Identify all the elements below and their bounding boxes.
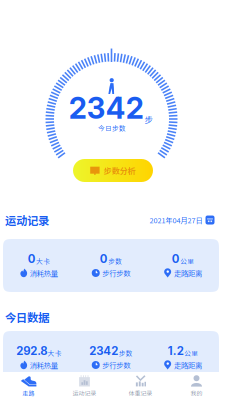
staticText: 消耗热量 <box>30 360 58 370</box>
staticText: 0 <box>172 252 180 266</box>
staticText: 2342 <box>69 90 144 126</box>
button[interactable]: 我的 <box>168 372 224 399</box>
staticText: 步数 <box>108 256 122 266</box>
staticText: 大卡 <box>36 256 50 266</box>
staticText: 走路距离 <box>174 268 202 278</box>
staticText: 步数 <box>119 348 133 358</box>
staticText: 走路 <box>22 389 34 398</box>
button[interactable]: 走路 <box>0 372 56 399</box>
staticText: 体重记录 <box>128 389 152 398</box>
staticText: 1.2 <box>168 344 184 358</box>
staticText: 运动记录 <box>72 389 96 398</box>
staticText: 步行步数 <box>102 360 130 370</box>
staticText: 消耗热量 <box>30 268 58 278</box>
staticText: 公里 <box>180 256 194 266</box>
button[interactable]: 体重记录 <box>112 372 168 399</box>
button[interactable]: 运动记录 <box>56 372 112 399</box>
staticText: 步数分析 <box>104 165 136 176</box>
staticText: 公里 <box>184 348 198 358</box>
staticText: 走路距离 <box>174 360 202 370</box>
staticText: 步 <box>144 113 153 126</box>
button[interactable]: 2021年04月27日 <box>149 215 214 225</box>
staticText: 2021年04月27日 <box>149 215 202 225</box>
staticText: 大卡 <box>48 348 62 358</box>
staticText: 我的 <box>190 389 202 398</box>
staticText: 2342 <box>89 344 118 358</box>
staticText: 292.8 <box>16 344 47 358</box>
staticText: 步行步数 <box>102 268 130 278</box>
staticText: 今日数据 <box>5 309 49 325</box>
button[interactable]: 步数分析 <box>73 159 153 182</box>
staticText: 运动记录 <box>5 212 49 228</box>
staticText: 0 <box>100 252 108 266</box>
staticText: 今日步数 <box>98 123 126 133</box>
staticText: 0 <box>28 252 36 266</box>
